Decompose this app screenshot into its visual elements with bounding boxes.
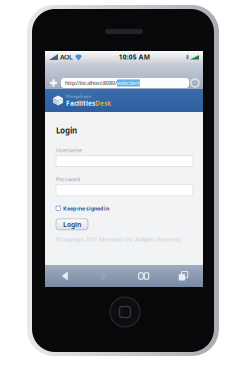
button[interactable]: Forward (84, 265, 124, 287)
button[interactable]: Pages (163, 265, 203, 287)
staticText: http://localhost:8080/ (65, 79, 117, 87)
staticText: ManageEngine (66, 93, 91, 99)
staticText: Facilities (66, 99, 95, 108)
staticText: Login (63, 220, 81, 229)
button[interactable]: Login (56, 219, 88, 230)
staticText: Keep me signed in (63, 205, 109, 212)
staticText: 10:05 AM (119, 53, 150, 61)
staticText: Username (56, 147, 82, 154)
staticText: © Copyright 2007 AdventNet Inc. All Righ… (56, 236, 181, 243)
staticText: webclient (117, 79, 140, 87)
button[interactable]: Bookmarks (124, 265, 163, 287)
button[interactable]: Back (45, 265, 84, 287)
staticText: Password (56, 176, 80, 183)
staticText: Login (56, 125, 77, 136)
staticText: Desk (95, 99, 111, 108)
staticText: AOL (60, 53, 73, 61)
